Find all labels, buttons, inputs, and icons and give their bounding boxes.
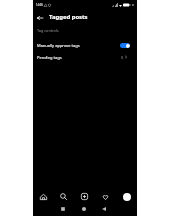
button[interactable]: Search	[53, 190, 74, 203]
staticText: Manually approve tags	[37, 43, 80, 48]
button[interactable]: Home	[33, 190, 53, 203]
staticText: Pending tags	[37, 55, 62, 60]
button[interactable]: Recents	[56, 203, 70, 214]
button[interactable]: Back	[34, 12, 45, 23]
button[interactable]: Pending tags	[33, 51, 137, 63]
staticText: Tagged posts	[49, 13, 88, 21]
button[interactable]: Activity	[95, 190, 116, 203]
button[interactable]: Manually approve tags	[33, 39, 137, 51]
button[interactable]: Back	[97, 203, 111, 214]
button[interactable]: Home	[77, 203, 91, 214]
staticText: Tag controls	[37, 28, 59, 33]
staticText: 14:06	[36, 3, 43, 7]
button[interactable]: Profile	[116, 190, 137, 203]
button[interactable]: Create	[74, 190, 95, 203]
staticText: 0	[121, 55, 124, 60]
